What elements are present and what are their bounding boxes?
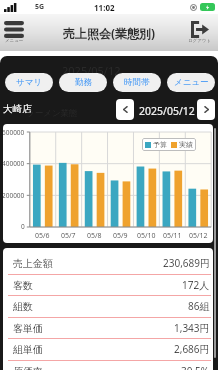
button[interactable]: 次の日 [197, 99, 215, 120]
button[interactable]: 客数 [8, 275, 211, 295]
staticText: 売上照会(業態別) [63, 25, 156, 41]
staticText: 組単価 [13, 343, 43, 356]
button[interactable]: 原価率 [8, 361, 211, 370]
staticText: 05/8 [87, 231, 102, 241]
staticText: 客数 [13, 279, 33, 292]
button[interactable]: 勤務 [59, 73, 107, 92]
staticText: 11:02 [94, 2, 115, 13]
staticText: 勤務 [75, 77, 92, 88]
button[interactable]: 組単価 [8, 339, 211, 359]
staticText: 2025/05/12 [139, 104, 195, 118]
staticText: 実績 [179, 140, 193, 149]
staticText: 05/11 [163, 231, 182, 241]
staticText: 05/6 [35, 231, 50, 241]
staticText: 2,686円 [174, 342, 210, 356]
button[interactable]: サマリ [5, 73, 53, 92]
staticText: 2025/05/12 [62, 63, 121, 78]
staticText: 時間帯 [124, 77, 150, 88]
staticText: 1,343円 [174, 321, 210, 335]
button[interactable]: 客単価 [8, 318, 211, 338]
staticText: 予算 [153, 140, 167, 149]
button[interactable]: 前の日 [116, 99, 134, 120]
button[interactable]: 売上金額 [8, 253, 211, 273]
staticText: 売上金額 [13, 257, 53, 270]
staticText: 客単価 [13, 322, 43, 335]
button[interactable]: 組数 [8, 296, 211, 316]
button[interactable]: ログアウト [187, 21, 213, 44]
button[interactable]: メニュー [167, 73, 215, 92]
staticText: 30.5% [181, 364, 210, 370]
staticText: 05/7 [61, 231, 76, 241]
staticText: 86組 [188, 299, 210, 313]
staticText: 0 [21, 222, 25, 231]
staticText: 600000 [3, 128, 25, 137]
staticText: サマリ [16, 77, 43, 88]
staticText: 大崎店 [3, 103, 32, 115]
staticText: 230,689円 [163, 256, 210, 270]
staticText: 05/10 [137, 231, 156, 241]
staticText: 組数 [13, 300, 33, 313]
staticText: 5G [35, 2, 45, 12]
staticText: 172人 [182, 278, 210, 292]
staticText: ログアウト [188, 38, 212, 44]
staticText: メニュー [174, 77, 209, 88]
staticText: メニュー [5, 38, 24, 44]
button[interactable]: メニュー [3, 21, 25, 44]
staticText: 200000 [3, 191, 25, 200]
staticText: 原価率 [13, 365, 43, 370]
staticText: 05/12 [189, 231, 208, 241]
staticText: 05/9 [113, 231, 128, 241]
staticText: 400000 [3, 159, 25, 168]
button[interactable]: 時間帯 [113, 73, 161, 92]
staticText: ラーメン業態 [26, 108, 78, 119]
